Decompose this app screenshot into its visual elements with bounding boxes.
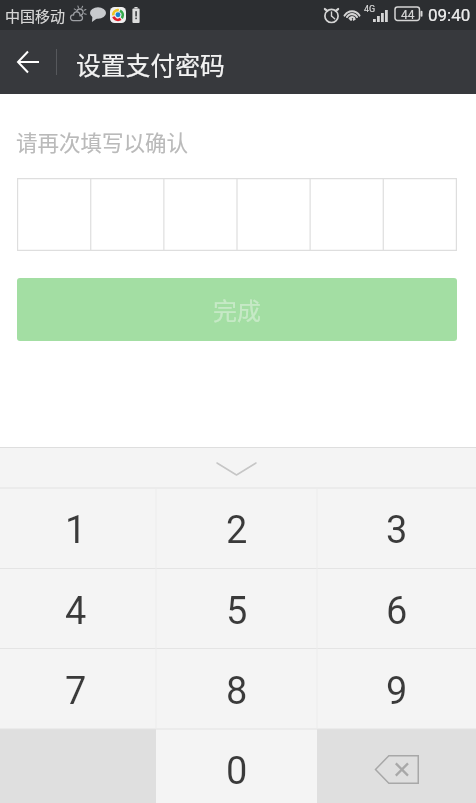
staticText: 7: [65, 669, 87, 714]
staticText: 4: [65, 589, 87, 634]
button[interactable]: Hide keyboard: [0, 447, 476, 488]
button[interactable]: 4: [0, 569, 156, 649]
staticText: 09:40: [428, 5, 471, 25]
button[interactable]: 3: [317, 488, 476, 569]
staticText: 4G: [364, 4, 376, 15]
staticText: 请再次填写以确认: [16, 126, 189, 157]
button[interactable]: 7: [0, 649, 156, 730]
staticText: 44: [401, 8, 415, 22]
staticText: 0: [226, 749, 248, 794]
button[interactable]: 8: [156, 649, 317, 730]
staticText: 5: [226, 589, 248, 634]
button[interactable]: Back: [0, 30, 56, 94]
staticText: 2: [226, 508, 248, 553]
button[interactable]: 5: [156, 569, 317, 649]
staticText: 3: [386, 508, 408, 553]
button[interactable]: 1: [0, 488, 156, 569]
staticText: 中国移动: [5, 5, 66, 27]
staticText: 6: [386, 589, 408, 634]
staticText: 9: [386, 669, 408, 714]
button[interactable]: 完成: [17, 278, 457, 341]
button[interactable]: 2: [156, 488, 317, 569]
button[interactable]: Delete: [317, 729, 476, 803]
button[interactable]: 9: [317, 649, 476, 730]
staticText: 1: [65, 508, 87, 553]
button[interactable]: 6: [317, 569, 476, 649]
staticText: 完成: [213, 292, 261, 327]
button[interactable]: 0: [156, 729, 317, 803]
staticText: 8: [226, 669, 248, 714]
staticText: 设置支付密码: [76, 46, 225, 82]
